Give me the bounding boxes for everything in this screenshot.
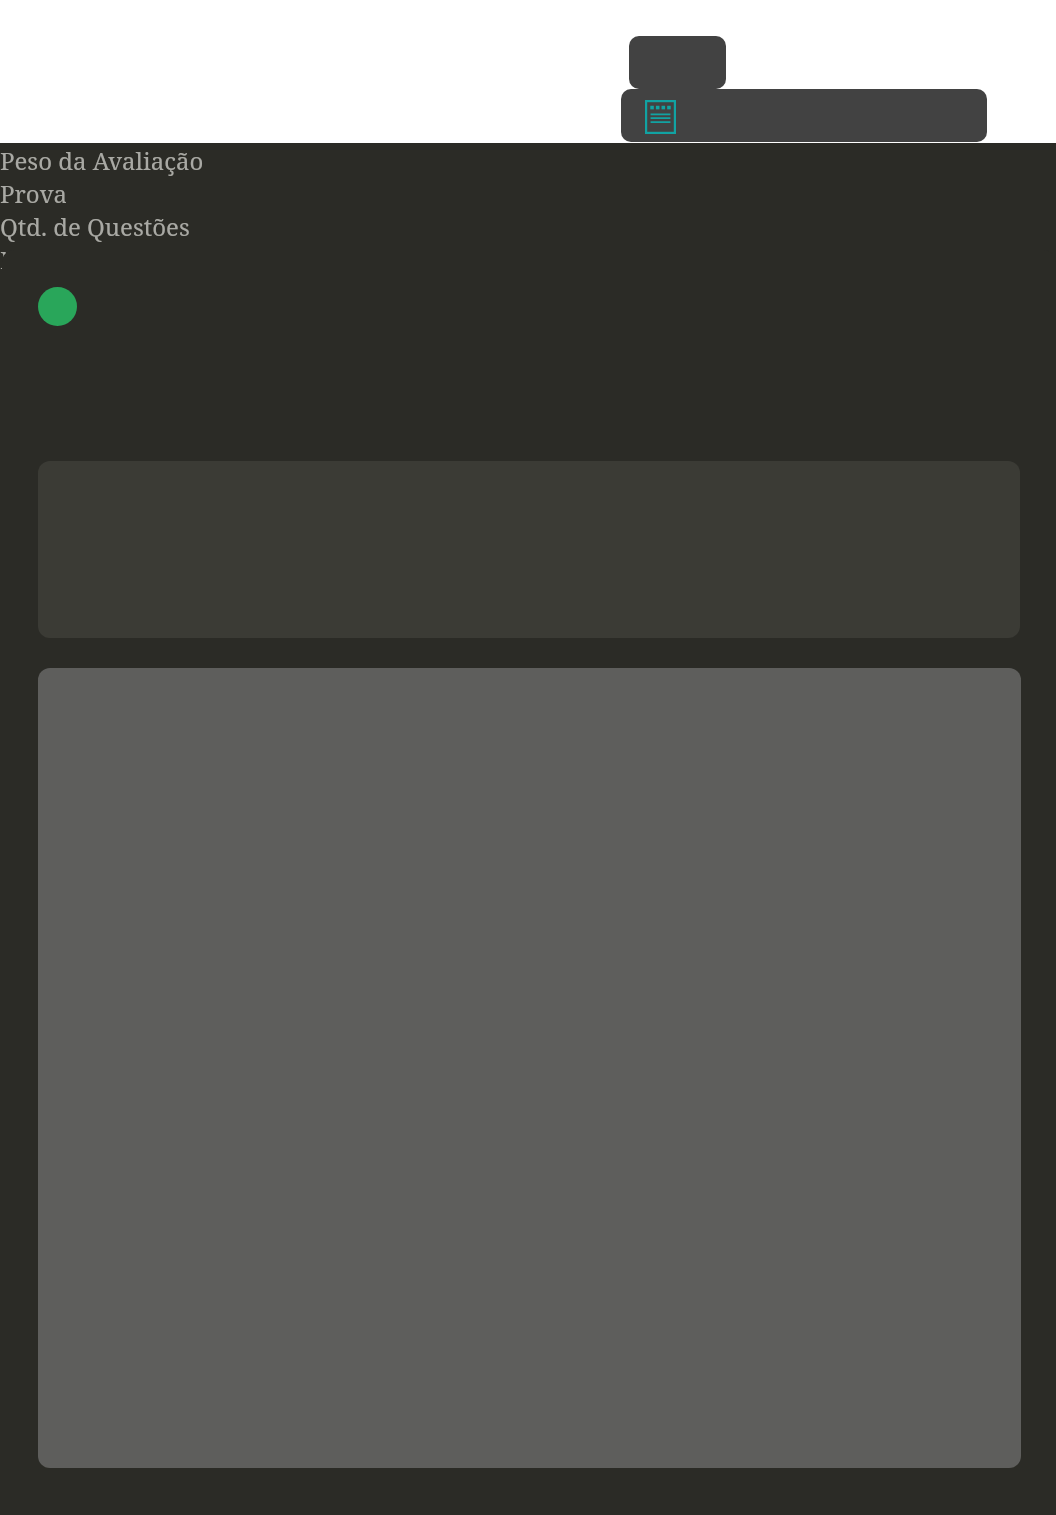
staticText: Peso da Avaliação xyxy=(0,144,204,177)
other: Avaliação xyxy=(645,100,676,134)
staticText: Qtd. de Questões xyxy=(0,210,190,243)
staticText: Nota xyxy=(0,243,55,276)
button[interactable]: Avaliação xyxy=(621,89,987,142)
button[interactable] xyxy=(629,36,726,89)
staticText: Prova xyxy=(0,177,68,210)
button[interactable]: Status xyxy=(38,287,77,326)
